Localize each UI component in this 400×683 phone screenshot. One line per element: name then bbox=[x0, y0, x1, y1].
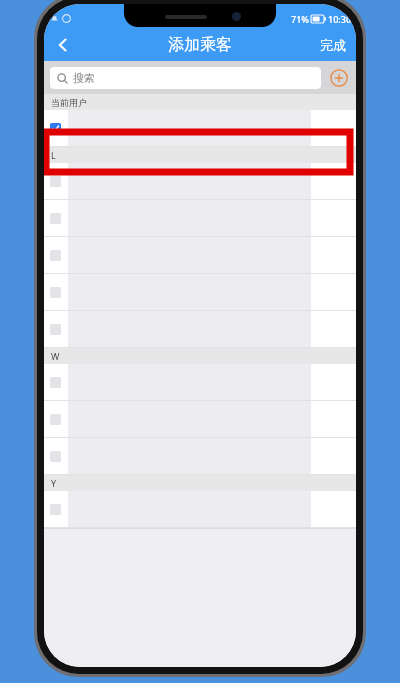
button[interactable] bbox=[44, 237, 356, 273]
button[interactable] bbox=[44, 110, 356, 146]
staticText: Y bbox=[51, 477, 57, 489]
button[interactable]: Back bbox=[44, 29, 82, 61]
button[interactable] bbox=[44, 163, 356, 199]
button[interactable] bbox=[44, 274, 356, 310]
staticText: W bbox=[51, 350, 60, 362]
button[interactable]: 搜索 bbox=[50, 67, 321, 89]
button[interactable] bbox=[44, 311, 356, 347]
button[interactable] bbox=[44, 491, 356, 527]
staticText: 当前用户 bbox=[51, 97, 87, 108]
staticText: 71% bbox=[291, 13, 309, 25]
staticText: 搜索 bbox=[73, 71, 95, 85]
button[interactable] bbox=[44, 438, 356, 474]
staticText: 10:30 bbox=[328, 13, 352, 25]
button[interactable] bbox=[44, 364, 356, 400]
staticText: L bbox=[51, 149, 56, 161]
button[interactable] bbox=[44, 200, 356, 236]
button[interactable]: 完成 bbox=[310, 29, 356, 61]
staticText: 添加乘客 bbox=[168, 35, 232, 55]
button[interactable] bbox=[44, 401, 356, 437]
staticText: 完成 bbox=[320, 37, 346, 53]
button[interactable]: Add passenger bbox=[328, 67, 350, 89]
